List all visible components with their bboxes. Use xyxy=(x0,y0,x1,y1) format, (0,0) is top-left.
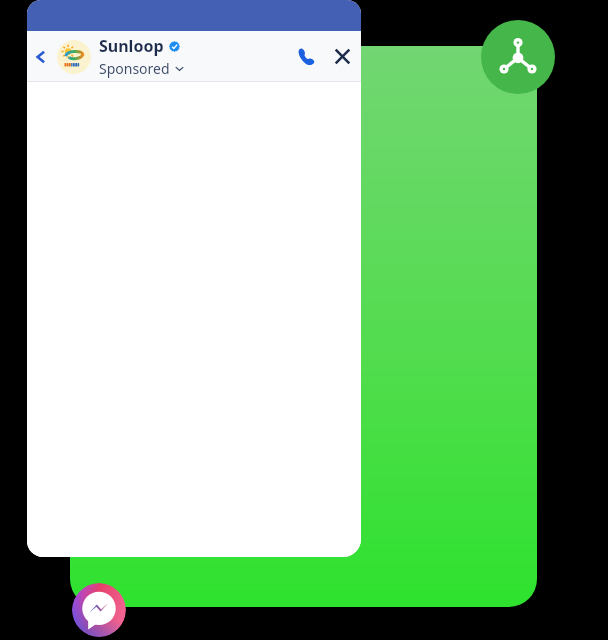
button[interactable]: Sunloop profile xyxy=(57,40,91,74)
staticText: Sunloop xyxy=(99,35,164,57)
button[interactable]: Back xyxy=(27,31,55,82)
button[interactable]: Call xyxy=(289,31,323,82)
staticText: Sponsored xyxy=(99,59,170,78)
button[interactable]: Messenger xyxy=(72,583,126,637)
button[interactable]: Sunloop xyxy=(99,35,289,78)
button[interactable]: Share network xyxy=(481,20,555,94)
button[interactable]: Close xyxy=(323,31,361,82)
